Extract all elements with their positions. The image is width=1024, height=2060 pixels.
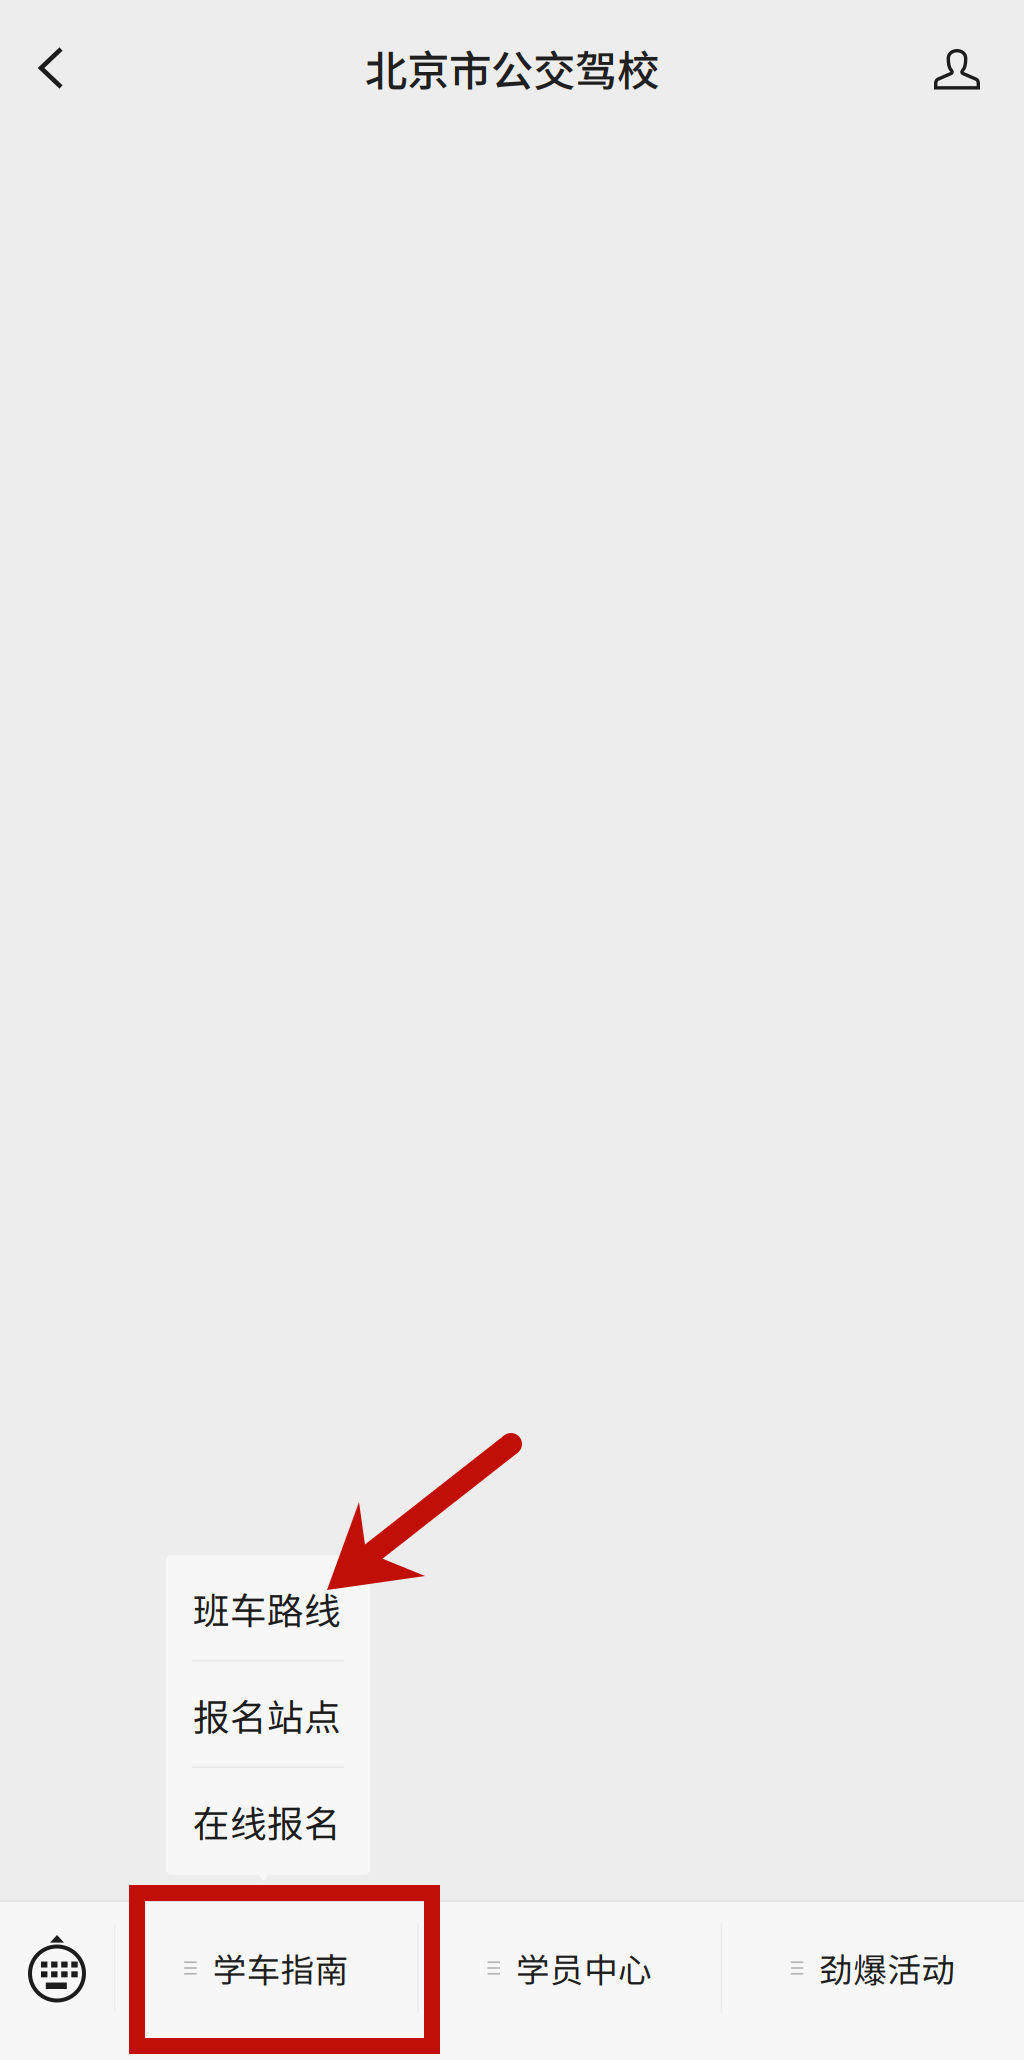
button[interactable]: 报名站点 [166, 1661, 370, 1768]
button[interactable]: 在线报名 [166, 1768, 370, 1874]
staticText: 班车路线 [193, 1582, 341, 1635]
button[interactable]: 劲爆活动 [722, 1902, 1024, 2034]
staticText: 学员中心 [516, 1944, 652, 1992]
button[interactable]: Back [0, 6, 102, 130]
staticText: 报名站点 [193, 1688, 341, 1741]
staticText: 劲爆活动 [819, 1944, 955, 1992]
staticText: 北京市公交驾校 [365, 37, 659, 98]
button[interactable]: 学员中心 [419, 1902, 721, 2034]
button[interactable]: 班车路线 [166, 1555, 370, 1661]
button[interactable]: 学车指南 [115, 1902, 417, 2034]
staticText: 学车指南 [213, 1944, 349, 1992]
button[interactable]: Keyboard [0, 1902, 114, 2034]
button[interactable]: Profile [890, 6, 1024, 130]
staticText: 在线报名 [193, 1795, 341, 1848]
